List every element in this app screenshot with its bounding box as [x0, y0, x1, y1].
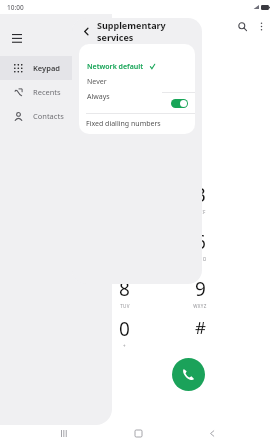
staticText: TUV [120, 303, 130, 309]
staticText: 9 [195, 276, 206, 302]
staticText: MNO [194, 256, 207, 262]
staticText: 0 [119, 316, 130, 342]
button[interactable]: Never [80, 74, 162, 89]
button[interactable]: Fixed dialling numbers [79, 114, 195, 134]
staticText: Fixed dialling numbers [86, 119, 161, 129]
button[interactable]: Keypad [0, 56, 106, 80]
button[interactable]: 0 [100, 316, 148, 352]
button[interactable]: Recents [54, 425, 74, 441]
button[interactable]: Network default [80, 59, 162, 74]
staticText: WXYZ [193, 303, 207, 309]
button[interactable]: # [176, 316, 224, 352]
button[interactable]: 3 [176, 182, 224, 218]
staticText: Keypad [33, 63, 60, 73]
button[interactable]: More options [252, 17, 270, 35]
button[interactable]: Back [202, 425, 222, 441]
staticText: Network default [87, 62, 144, 72]
button[interactable]: Always [80, 89, 162, 104]
staticText: 8 [119, 276, 130, 302]
staticText: Contacts [33, 111, 64, 121]
button[interactable]: 8 [100, 276, 148, 312]
staticText: + [123, 343, 126, 349]
button[interactable]: Recents [0, 80, 106, 104]
button[interactable]: 9 [176, 276, 224, 312]
staticText: 3 [195, 182, 206, 208]
staticText: DEF [196, 209, 206, 215]
button[interactable]: Back [79, 24, 93, 38]
staticText: Never [87, 77, 107, 87]
button[interactable]: Contacts [0, 104, 106, 128]
staticText: Call waiting [86, 98, 124, 108]
button[interactable]: 6 [176, 229, 224, 265]
button[interactable]: Call barring [79, 72, 195, 92]
staticText: Always [87, 92, 110, 102]
button[interactable]: Call [172, 358, 205, 391]
button[interactable]: Menu [6, 28, 28, 50]
staticText: Supplementary services [97, 19, 202, 43]
staticText: 6 [195, 229, 206, 255]
staticText: Call barring [86, 77, 125, 87]
staticText: # [195, 316, 206, 339]
button[interactable]: Home [128, 425, 148, 441]
button[interactable]: Search [232, 16, 252, 36]
button[interactable]: Call waiting [79, 93, 195, 113]
staticText: 10:00 [7, 3, 24, 12]
staticText: Recents [33, 87, 61, 97]
